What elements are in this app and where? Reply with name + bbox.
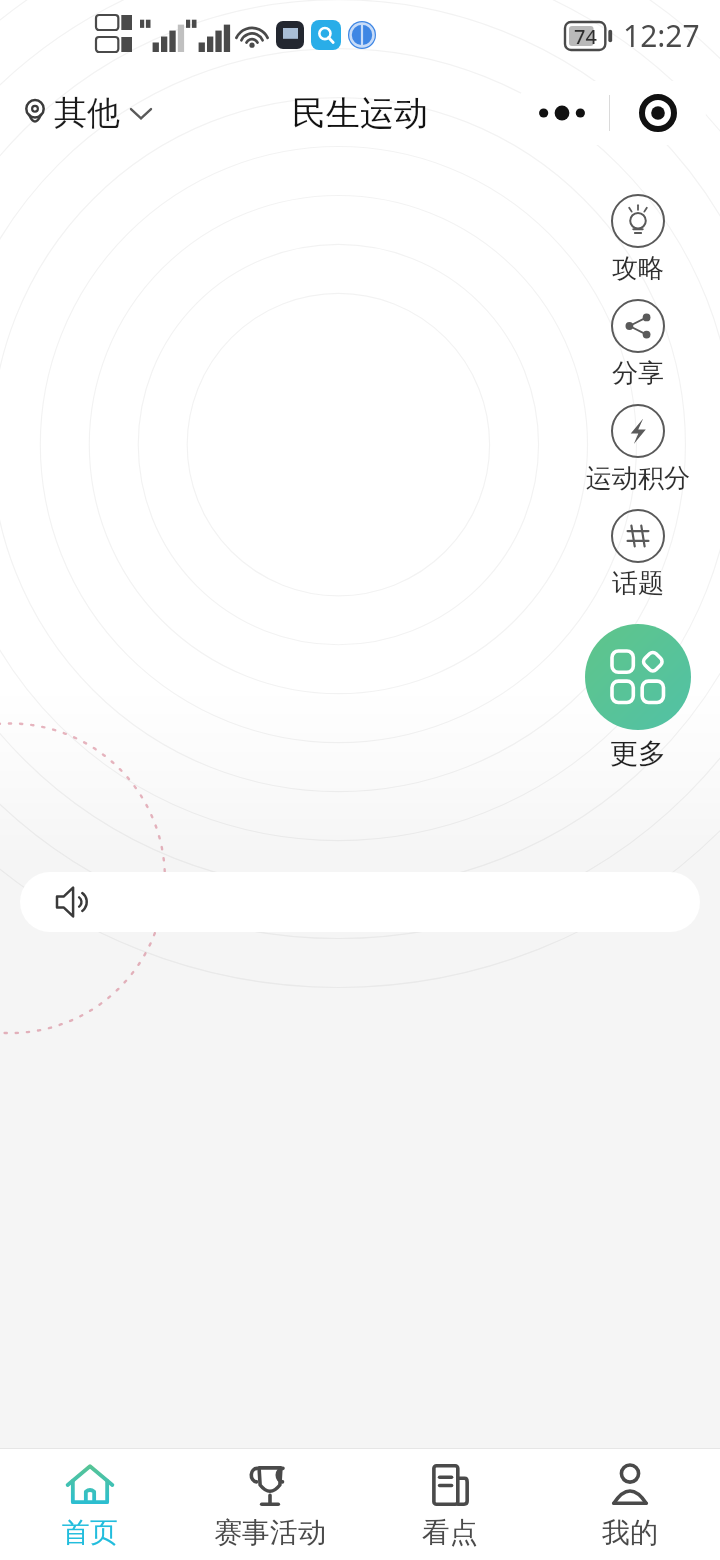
staticText: 看点 [422, 1515, 478, 1550]
button[interactable]: 攻略 [607, 194, 669, 285]
button[interactable]: 运动积分 [582, 404, 694, 495]
staticText: 攻略 [612, 252, 664, 285]
staticText: 赛事活动 [214, 1515, 326, 1550]
staticText: 分享 [612, 357, 664, 390]
staticText: 其他 [54, 92, 120, 134]
button[interactable]: 话题 [607, 509, 669, 600]
button[interactable]: 看点 [360, 1449, 540, 1560]
staticText: 首页 [62, 1515, 118, 1550]
button[interactable]: 我的 [540, 1449, 720, 1560]
staticText: 民生运动 [292, 92, 428, 135]
staticText: 12:27 [623, 15, 700, 56]
button[interactable]: 首页 [0, 1449, 180, 1560]
button[interactable]: Announcement [20, 872, 700, 932]
button[interactable]: 更多 [585, 624, 691, 730]
staticText: 话题 [612, 567, 664, 600]
staticText: 74 [574, 23, 597, 50]
button[interactable]: Mini program menu [514, 81, 706, 145]
button[interactable]: 分享 [607, 299, 669, 390]
staticText: 我的 [602, 1515, 658, 1550]
staticText: 更多 [610, 736, 666, 771]
button[interactable]: 赛事活动 [180, 1449, 360, 1560]
button[interactable]: 其他 [12, 84, 160, 142]
staticText: 运动积分 [586, 462, 690, 495]
